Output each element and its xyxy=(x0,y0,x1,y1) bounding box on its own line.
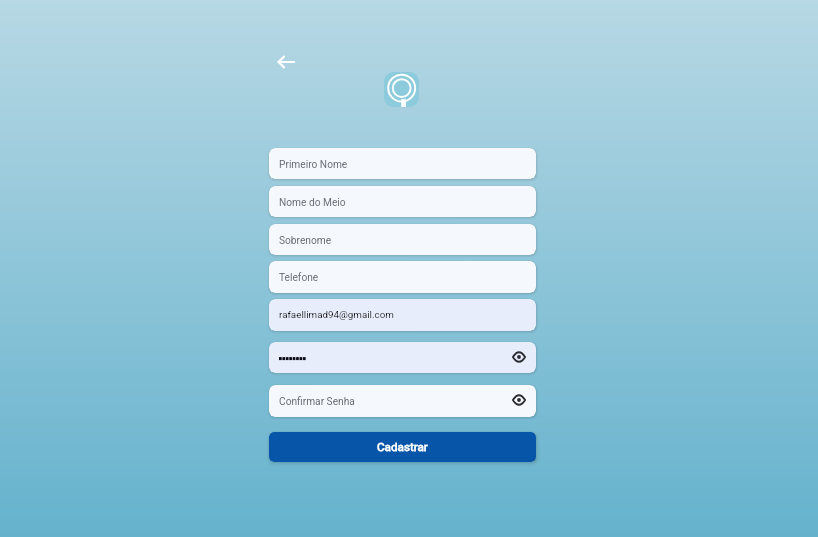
staticText: Cadastrar xyxy=(377,440,428,454)
staticText: Primeiro Nome xyxy=(279,159,348,171)
staticText: Sobrenome xyxy=(279,235,332,247)
staticText: rafaellimad94@gmail.com xyxy=(279,309,394,320)
button[interactable]: Show password xyxy=(510,391,528,409)
button[interactable]: Show password xyxy=(269,342,536,373)
staticText: Confirmar Senha xyxy=(279,396,355,408)
button[interactable]: rafaellimad94@gmail.com xyxy=(269,299,536,331)
button[interactable]: Telefone xyxy=(269,261,536,293)
button[interactable]: Show password xyxy=(510,348,528,366)
button[interactable]: Primeiro Nome xyxy=(269,148,536,179)
button[interactable]: Nome do Meio xyxy=(269,186,536,217)
button[interactable]: Back xyxy=(273,49,299,75)
button[interactable]: Confirmar Senha xyxy=(269,385,536,417)
staticText: Telefone xyxy=(279,272,319,284)
button[interactable]: Sobrenome xyxy=(269,224,536,255)
staticText: Nome do Meio xyxy=(279,197,346,209)
button[interactable]: Cadastrar xyxy=(269,432,536,462)
